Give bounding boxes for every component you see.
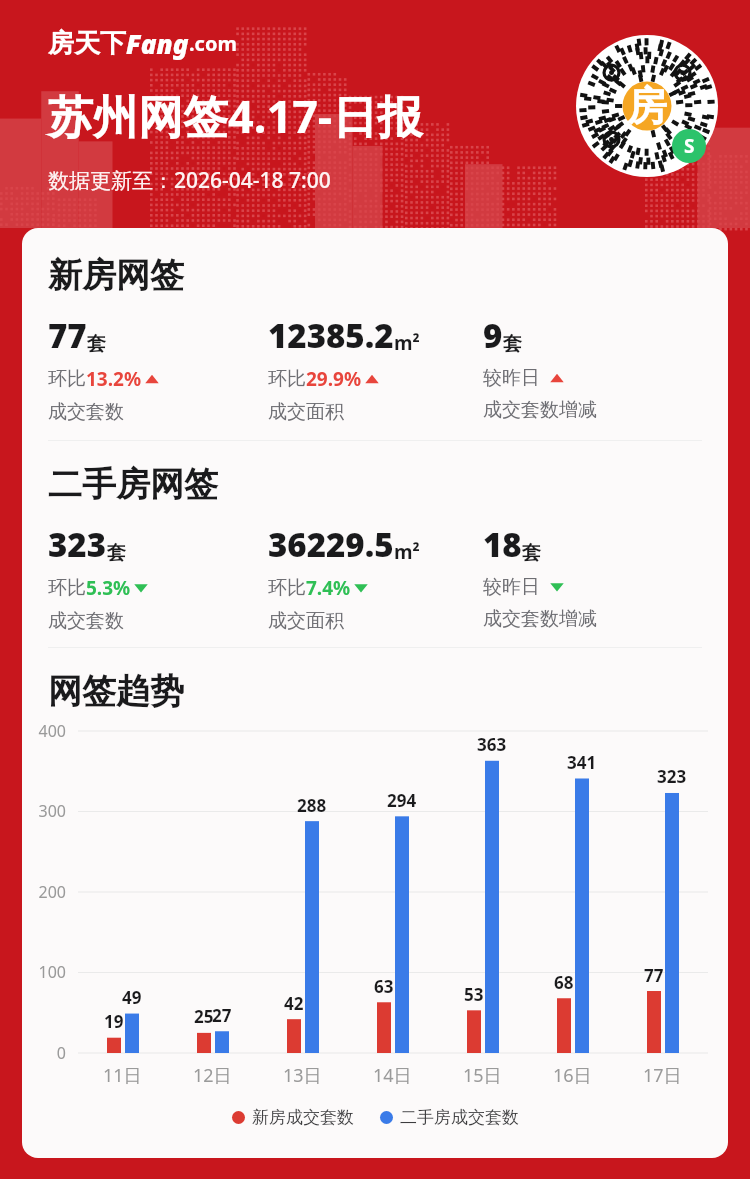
staticText: 环比 <box>48 367 86 391</box>
staticText: 成交面积 <box>268 609 344 633</box>
staticText: 环比 <box>268 576 306 600</box>
staticText: 12385.2 <box>268 313 394 358</box>
staticText: 二手房成交套数 <box>400 1107 519 1128</box>
button[interactable]: 18 <box>483 522 712 631</box>
staticText: 323 <box>657 765 687 788</box>
staticText: .com <box>189 30 237 57</box>
staticText: 成交套数 <box>48 609 124 633</box>
staticText: 42 <box>284 992 304 1015</box>
staticText: S <box>684 133 695 159</box>
staticText: 成交套数 <box>48 400 124 424</box>
staticText: 53 <box>464 983 484 1006</box>
staticText: 套 <box>107 541 126 565</box>
staticText: 13日 <box>283 1063 322 1088</box>
staticText: 新房网签 <box>48 254 184 297</box>
staticText: 288 <box>297 794 327 817</box>
staticText: 5.3% <box>86 575 131 601</box>
staticText: 环比 <box>48 576 86 600</box>
staticText: 7.4% <box>306 575 351 601</box>
button[interactable]: 二手房成交套数 <box>380 1107 519 1128</box>
button[interactable]: 323 <box>48 522 268 633</box>
staticText: 房天下 <box>48 27 126 60</box>
staticText: 200 <box>38 881 66 903</box>
button[interactable]: 9 <box>483 313 712 422</box>
staticText: 成交套数增减 <box>483 607 597 631</box>
staticText: 323 <box>48 522 107 567</box>
staticText: 18 <box>483 522 522 567</box>
staticText: 100 <box>38 961 66 983</box>
staticText: 套 <box>503 332 522 356</box>
staticText: 较昨日 <box>483 575 540 599</box>
staticText: 苏州网签4.17-日报 <box>48 85 423 146</box>
staticText: 77 <box>644 964 664 987</box>
staticText: 341 <box>567 751 597 774</box>
staticText: 300 <box>38 800 66 822</box>
staticText: 数据更新至：2026-04-18 7:00 <box>48 166 331 195</box>
staticText: 19 <box>104 1010 124 1033</box>
staticText: 25 <box>194 1005 214 1028</box>
staticText: 套 <box>522 541 541 565</box>
button[interactable]: 新房成交套数 <box>232 1107 354 1128</box>
staticText: 套 <box>87 332 106 356</box>
staticText: 12日 <box>193 1063 232 1088</box>
staticText: 较昨日 <box>483 366 540 390</box>
staticText: 成交面积 <box>268 400 344 424</box>
staticText: 15日 <box>463 1063 502 1088</box>
staticText: 网签趋势 <box>48 670 184 713</box>
button[interactable]: 12385.2 <box>268 313 483 424</box>
staticText: 400 <box>38 720 66 742</box>
staticText: 294 <box>387 789 417 812</box>
staticText: Fang <box>126 26 189 61</box>
staticText: 0 <box>56 1042 66 1064</box>
staticText: 36229.5 <box>268 522 394 567</box>
staticText: m² <box>394 539 420 565</box>
staticText: m² <box>394 330 420 356</box>
staticText: 27 <box>212 1004 232 1027</box>
staticText: 房 <box>627 81 667 131</box>
staticText: 77 <box>48 313 87 358</box>
staticText: 363 <box>477 733 507 756</box>
staticText: 新房成交套数 <box>252 1107 354 1128</box>
staticText: 二手房网签 <box>48 463 218 506</box>
staticText: 14日 <box>373 1063 412 1088</box>
staticText: 13.2% <box>86 366 142 392</box>
staticText: 29.9% <box>306 366 362 392</box>
staticText: 17日 <box>643 1063 682 1088</box>
staticText: 环比 <box>268 367 306 391</box>
staticText: 68 <box>554 971 574 994</box>
staticText: 成交套数增减 <box>483 398 597 422</box>
staticText: 49 <box>122 986 142 1009</box>
button[interactable]: 小程序二维码 <box>576 35 718 177</box>
button[interactable]: 77 <box>48 313 268 424</box>
staticText: 16日 <box>553 1063 592 1088</box>
button[interactable]: 36229.5 <box>268 522 483 633</box>
staticText: 11日 <box>103 1063 142 1088</box>
staticText: 9 <box>483 313 503 358</box>
staticText: 63 <box>374 975 394 998</box>
